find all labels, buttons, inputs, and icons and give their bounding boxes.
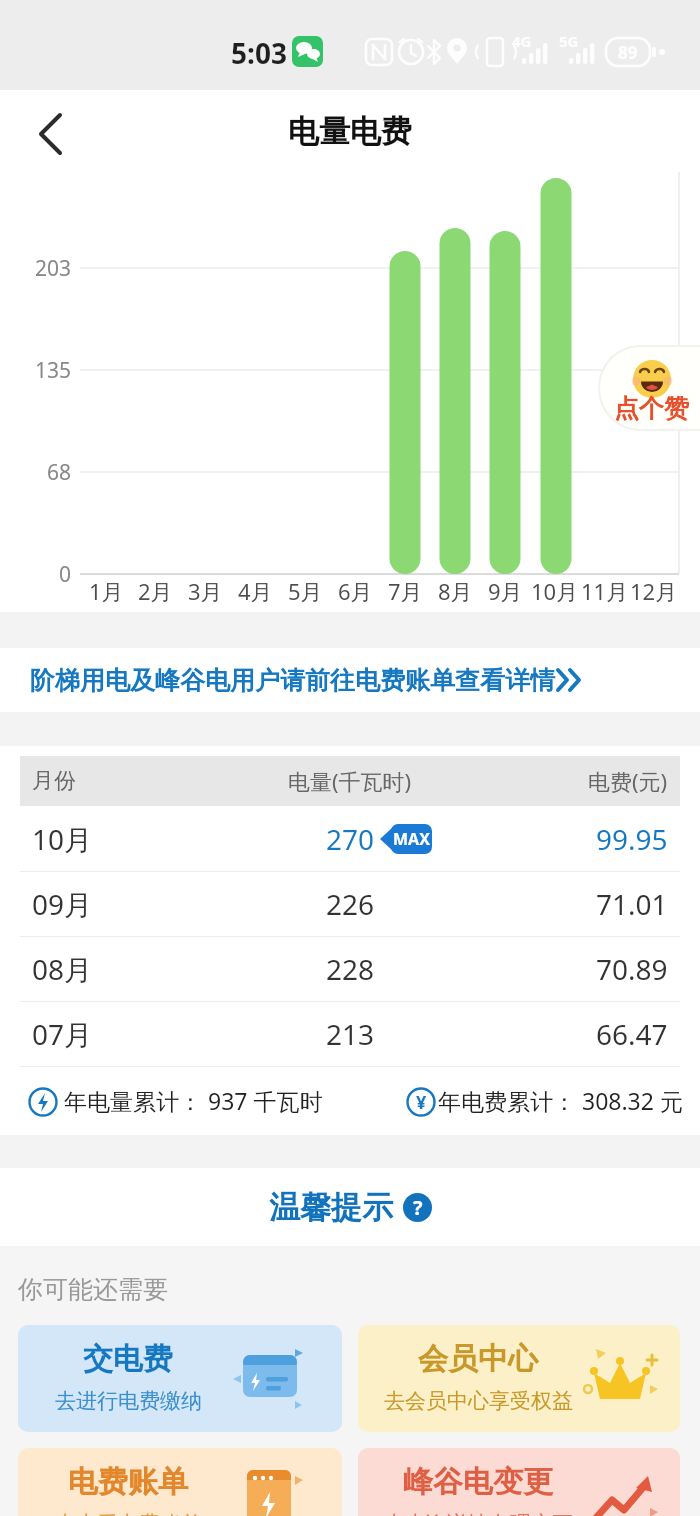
staticText: 月份 [32,767,76,795]
staticText: 阶梯用电及峰谷电用户请前往电费账单查看详情 [30,665,555,696]
staticText: 电费(元) [588,766,668,796]
staticText: 3月 [188,576,223,606]
staticText: 135 [35,356,72,385]
staticText: 电量电费 [288,112,412,151]
button[interactable]: 温馨提示 [269,1188,432,1227]
staticText: 11月 [581,576,629,606]
staticText: 点个赞 [614,393,689,423]
button[interactable]: 10月 [0,806,700,871]
staticText: 7月 [388,576,423,606]
staticText: 电费账单 [68,1463,188,1501]
button[interactable] [28,110,76,158]
staticText: 年电量累计： 937 千瓦时 [64,1085,323,1116]
staticText: 会员中心 [418,1340,538,1378]
staticText: ? [413,1194,423,1221]
button[interactable]: 08月 [0,936,700,1001]
staticText: 203 [35,254,72,283]
staticText: 10月 [531,576,579,606]
staticText: 99.95 [596,820,668,858]
staticText: 去进行电费缴纳 [55,1388,202,1414]
staticText: 08月 [32,950,93,988]
button[interactable]: 电费账单 [18,1448,342,1516]
staticText: 交电费 [83,1340,173,1378]
staticText: 71.01 [596,885,668,923]
staticText: 5:03 [231,34,287,70]
staticText: 9月 [488,576,523,606]
staticText: 5G [559,31,579,49]
staticText: 70.89 [596,950,668,988]
staticText: 89 [618,41,638,64]
staticText: 峰谷电变更 [403,1463,553,1501]
button[interactable]: 会员中心 [358,1325,680,1432]
staticText: 07月 [32,1015,93,1053]
staticText: 4月 [238,576,273,606]
staticText: 228 [326,950,375,988]
button[interactable]: 阶梯用电及峰谷电用户请前往电费账单查看详情 [0,648,700,712]
staticText: 去查询详情办理变更 [384,1511,573,1516]
staticText: 你可能还需要 [18,1274,168,1304]
button[interactable]: 点个赞 [600,347,700,429]
staticText: MAX [393,828,430,850]
staticText: 66.47 [596,1015,668,1053]
button[interactable]: 交电费 [18,1325,342,1432]
staticText: 年电费累计： 308.32 元 [438,1085,683,1116]
staticText: 5月 [288,576,323,606]
staticText: 12月 [630,576,678,606]
staticText: 270 [326,820,375,858]
staticText: 温馨提示 [269,1188,393,1227]
staticText: ¥ [416,1090,427,1115]
staticText: 电量(千瓦时) [288,766,412,796]
staticText: 8月 [438,576,473,606]
staticText: 6月 [338,576,373,606]
staticText: 09月 [32,885,93,923]
button[interactable]: 峰谷电变更 [358,1448,680,1516]
staticText: 10月 [32,820,93,858]
staticText: 1月 [89,576,124,606]
staticText: 去会员中心享受权益 [384,1388,573,1414]
staticText: 213 [326,1015,375,1053]
button[interactable]: 07月 [0,1001,700,1066]
staticText: 去查看电费账单 [55,1511,202,1516]
staticText: 0 [59,560,72,589]
staticText: 2月 [138,576,173,606]
staticText: 68 [47,458,72,487]
button[interactable]: 09月 [0,871,700,936]
staticText: 4G [512,31,532,49]
staticText: 226 [326,885,375,923]
